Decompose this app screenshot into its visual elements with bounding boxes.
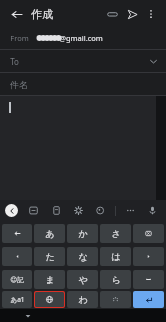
staticText: ら — [111, 274, 121, 285]
staticText: や — [78, 274, 88, 285]
staticText: 作成 — [31, 7, 53, 21]
button[interactable]: ま — [34, 270, 65, 289]
button[interactable]: か — [67, 224, 98, 243]
button[interactable]: ☺記 — [2, 270, 32, 289]
button[interactable]: Stickers — [93, 203, 108, 218]
button[interactable]: More — [123, 203, 138, 218]
button[interactable]: 件名 — [0, 73, 166, 95]
button[interactable]: Translate — [49, 203, 64, 218]
staticText: さ — [111, 228, 121, 239]
staticText: な — [78, 251, 88, 262]
staticText: ま — [45, 274, 55, 285]
button[interactable]: To — [0, 50, 166, 72]
button[interactable]: Space — [133, 270, 164, 289]
button[interactable]: Undo — [2, 224, 32, 243]
button[interactable]: Cursor left — [2, 247, 32, 266]
button[interactable]: た — [34, 247, 65, 266]
button[interactable]: Back — [6, 4, 26, 24]
staticText: ☺記 — [10, 276, 24, 284]
button[interactable]: Backspace — [133, 224, 164, 243]
button[interactable]: Settings — [71, 203, 86, 218]
button[interactable]: Hide toolbar — [5, 204, 18, 217]
button[interactable]: Enter — [133, 291, 164, 308]
staticText: あ — [45, 228, 55, 239]
button[interactable]: Voice input — [145, 203, 160, 218]
staticText: わ — [78, 294, 88, 305]
button[interactable]: は — [100, 247, 131, 266]
staticText: あa1 — [10, 295, 25, 304]
button[interactable]: や — [67, 270, 98, 289]
staticText: た — [45, 251, 55, 262]
staticText: 件名 — [10, 79, 28, 90]
button[interactable]: More options — [142, 5, 160, 23]
staticText: From — [10, 33, 29, 43]
button[interactable]: な — [67, 247, 98, 266]
button[interactable]: Attach file — [102, 4, 122, 24]
button[interactable]: Cursor right — [133, 247, 164, 266]
staticText: か — [78, 228, 88, 239]
button[interactable]: Hide keyboard — [22, 310, 33, 321]
button[interactable]: From — [0, 27, 166, 49]
button[interactable]: あa1 — [2, 291, 32, 308]
staticText: @gmail.com — [59, 33, 103, 43]
button[interactable]: わ — [67, 291, 98, 308]
button[interactable]: ら — [100, 270, 131, 289]
button[interactable]: さ — [100, 224, 131, 243]
staticText: To — [10, 56, 19, 67]
button[interactable]: Clipboard — [26, 203, 41, 218]
button[interactable]: Punctuation — [100, 291, 131, 308]
staticText: は — [111, 251, 121, 262]
button[interactable]: あ — [34, 224, 65, 243]
button[interactable]: Switch input language — [35, 292, 64, 307]
button[interactable]: Send — [122, 4, 142, 24]
